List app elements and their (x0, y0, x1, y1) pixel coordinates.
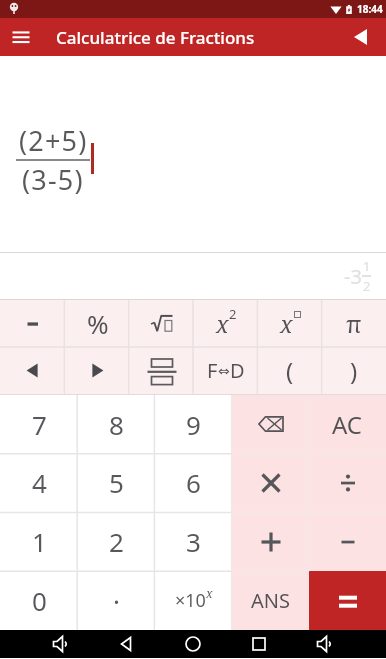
staticText: 1 (32, 524, 47, 559)
staticText: 6 (186, 465, 201, 500)
button[interactable] (8, 24, 34, 50)
staticText: 2 (363, 277, 371, 295)
button[interactable] (0, 300, 65, 347)
button[interactable] (130, 300, 194, 347)
button[interactable] (309, 571, 386, 630)
staticText: ( (286, 354, 294, 387)
button[interactable]: 0 (0, 571, 78, 630)
button[interactable] (48, 631, 74, 657)
button[interactable]: ( (258, 347, 322, 394)
staticText: -3 (344, 263, 362, 290)
staticText: 9 (186, 407, 201, 442)
staticText: x (206, 585, 213, 601)
button[interactable]: 2 (78, 512, 155, 571)
button[interactable] (114, 631, 140, 657)
button[interactable]: 7 (0, 395, 78, 453)
staticText: AC (332, 408, 363, 441)
button[interactable]: 4 (0, 453, 78, 512)
staticText: 0 (32, 583, 47, 618)
button[interactable]: AC (309, 395, 386, 453)
staticText: 7 (32, 407, 47, 442)
staticText: (2+5) (19, 122, 88, 159)
staticText: Calculatrice de Fractions (56, 26, 255, 49)
staticText: 5 (109, 465, 124, 500)
button[interactable]: 6 (155, 453, 232, 512)
staticText: 2 (229, 305, 237, 323)
button[interactable]: 8 (78, 395, 155, 453)
staticText: 18:44 (357, 2, 383, 16)
button[interactable] (130, 347, 194, 394)
button[interactable]: x (194, 300, 258, 347)
button[interactable]: 9 (155, 395, 232, 453)
staticText: 8 (109, 407, 124, 442)
staticText: ) (350, 354, 358, 387)
staticText: ⇔ (218, 363, 230, 379)
staticText: x (280, 308, 293, 339)
staticText: π (346, 307, 362, 340)
staticText: F (207, 357, 218, 384)
staticText: 1 (363, 257, 371, 275)
staticText: ANS (251, 587, 290, 614)
staticText: · (113, 583, 120, 618)
staticText: x (216, 308, 229, 339)
button[interactable] (180, 631, 206, 657)
button[interactable] (348, 24, 374, 50)
button[interactable] (246, 631, 272, 657)
staticText: ×10 (175, 588, 206, 613)
button[interactable]: 1 (0, 512, 78, 571)
button[interactable] (0, 347, 65, 394)
staticText: 2 (109, 524, 124, 559)
button[interactable]: x (258, 300, 322, 347)
staticText: % (87, 306, 109, 341)
staticText: (3-5) (22, 161, 84, 198)
button[interactable] (309, 512, 386, 571)
button[interactable] (309, 453, 386, 512)
staticText: 3 (186, 524, 201, 559)
button[interactable]: ANS (232, 571, 309, 630)
button[interactable] (232, 512, 309, 571)
staticText: 4 (32, 465, 47, 500)
button[interactable] (232, 395, 309, 453)
button[interactable]: 5 (78, 453, 155, 512)
staticText: D (230, 357, 245, 384)
button[interactable]: ) (322, 347, 386, 394)
button[interactable]: % (65, 300, 130, 347)
button[interactable] (65, 347, 130, 394)
button[interactable]: ×10 (155, 571, 232, 630)
button[interactable]: F (194, 347, 258, 394)
button[interactable]: · (78, 571, 155, 630)
button[interactable]: 3 (155, 512, 232, 571)
button[interactable]: π (322, 300, 386, 347)
button[interactable] (312, 631, 338, 657)
button[interactable] (232, 453, 309, 512)
